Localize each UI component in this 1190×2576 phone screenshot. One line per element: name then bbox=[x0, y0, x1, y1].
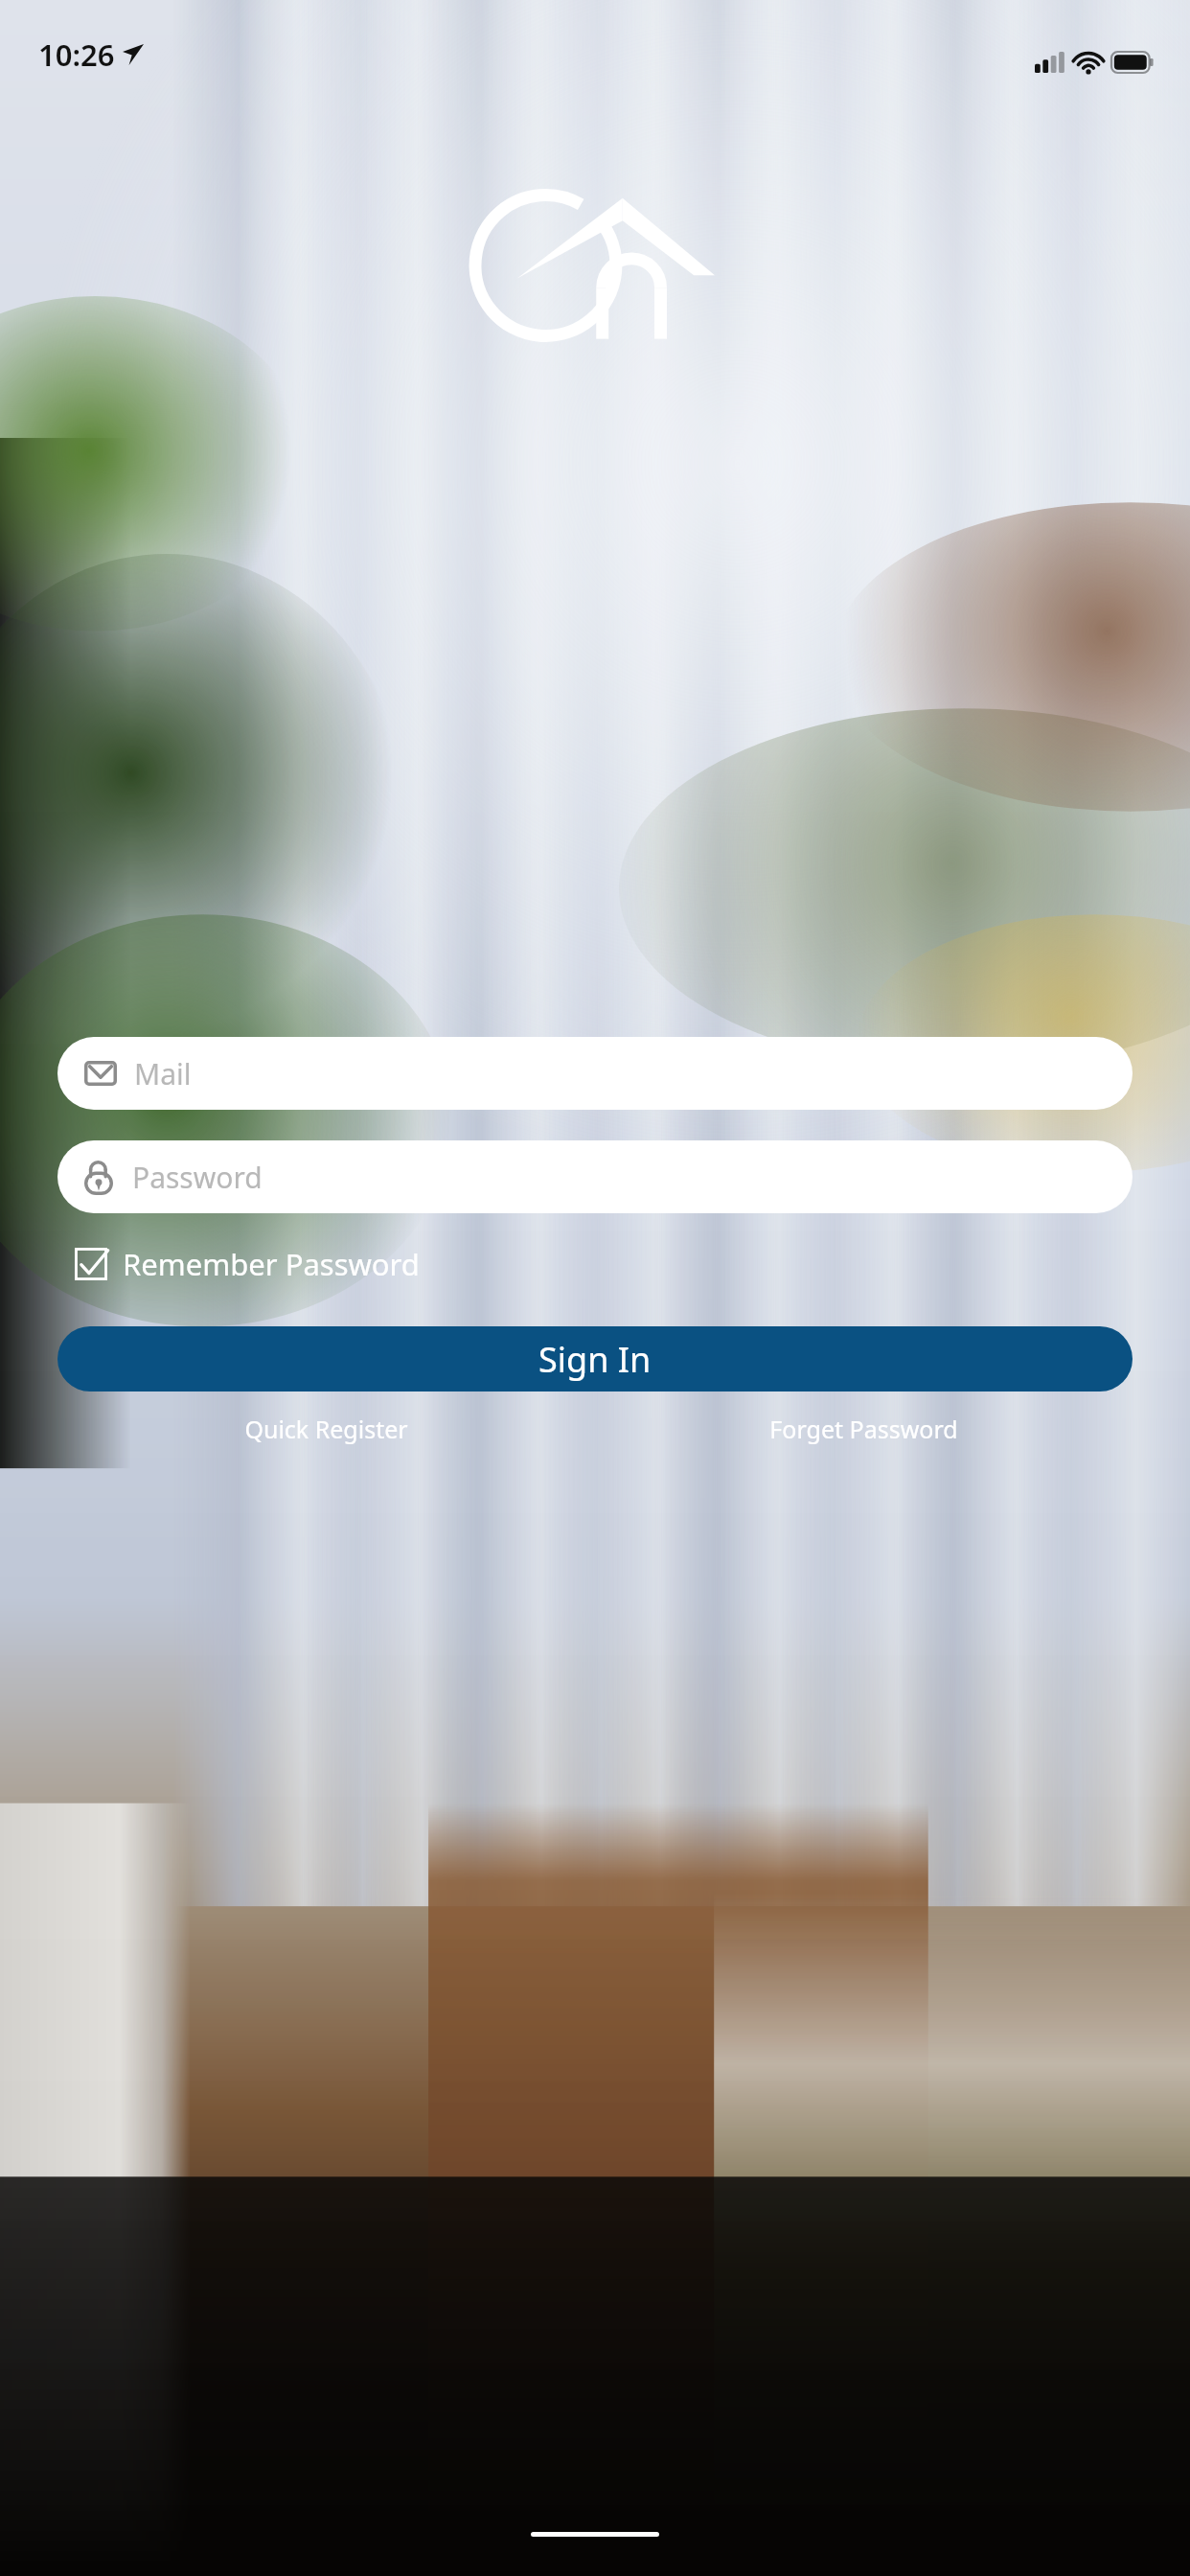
staticText: Quick Register bbox=[244, 1413, 408, 1445]
staticText: Sign In bbox=[538, 1336, 652, 1383]
button[interactable]: Sign In bbox=[57, 1326, 1133, 1391]
button[interactable]: Remember Password bbox=[57, 1238, 427, 1290]
button[interactable]: Password bbox=[57, 1140, 1133, 1213]
staticText: Remember Password bbox=[123, 1244, 420, 1284]
button[interactable]: Forget Password bbox=[756, 1405, 972, 1453]
button[interactable]: Quick Register bbox=[231, 1405, 422, 1453]
button[interactable]: Mail bbox=[57, 1037, 1133, 1110]
staticText: Password bbox=[132, 1158, 263, 1197]
staticText: 10:26 bbox=[38, 34, 115, 75]
staticText: Mail bbox=[134, 1054, 192, 1093]
staticText: Forget Password bbox=[769, 1413, 958, 1445]
